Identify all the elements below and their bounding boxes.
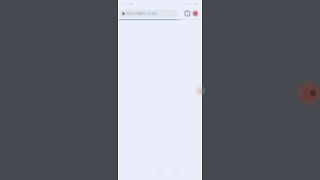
button[interactable]: Share [152, 171, 168, 174]
button[interactable]: https://example.de/app [118, 10, 178, 17]
button[interactable]: Back [120, 171, 136, 174]
staticText: 2 [186, 12, 188, 15]
staticText: https://example.de/app [126, 12, 157, 15]
button[interactable]: Tabs [183, 9, 191, 18]
button[interactable]: Bookmarks [168, 171, 184, 174]
button[interactable]: Menu [191, 9, 199, 18]
button[interactable]: Forward [136, 171, 152, 174]
button[interactable]: Tabs [184, 171, 200, 174]
